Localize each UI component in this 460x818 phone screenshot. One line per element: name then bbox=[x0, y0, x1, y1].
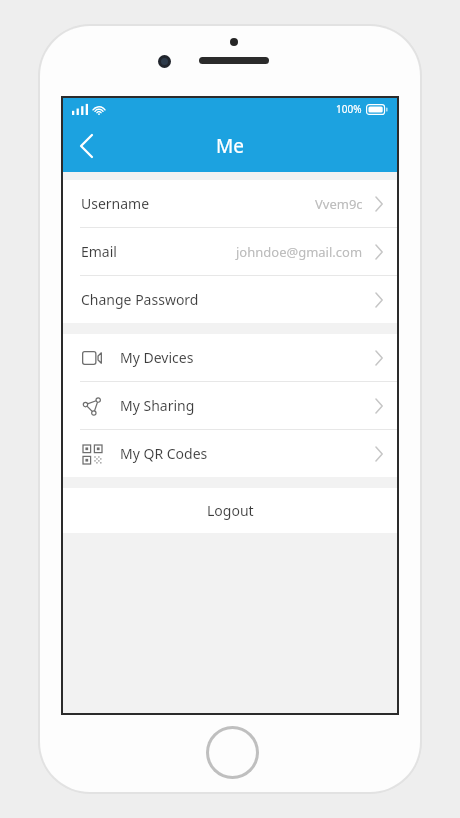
staticText: 100% bbox=[336, 102, 362, 116]
staticText: My QR Codes bbox=[120, 444, 208, 463]
staticText: Vvem9c bbox=[315, 195, 363, 213]
button[interactable]: Logout bbox=[63, 488, 397, 533]
staticText: My Devices bbox=[120, 348, 194, 367]
button[interactable]: My QR Codes bbox=[63, 430, 397, 477]
staticText: Me bbox=[216, 133, 244, 159]
button[interactable]: My Devices bbox=[63, 334, 397, 381]
button[interactable]: Change Password bbox=[63, 276, 397, 323]
staticText: Logout bbox=[207, 501, 254, 520]
staticText: Change Password bbox=[81, 290, 199, 309]
staticText: My Sharing bbox=[120, 396, 195, 415]
button[interactable]: Email bbox=[63, 228, 397, 275]
staticText: Username bbox=[81, 194, 150, 213]
button[interactable]: Username bbox=[63, 180, 397, 227]
staticText: Email bbox=[81, 242, 117, 261]
staticText: johndoe@gmail.com bbox=[236, 243, 363, 261]
button[interactable]: Back bbox=[63, 123, 109, 169]
button[interactable]: My Sharing bbox=[63, 382, 397, 429]
